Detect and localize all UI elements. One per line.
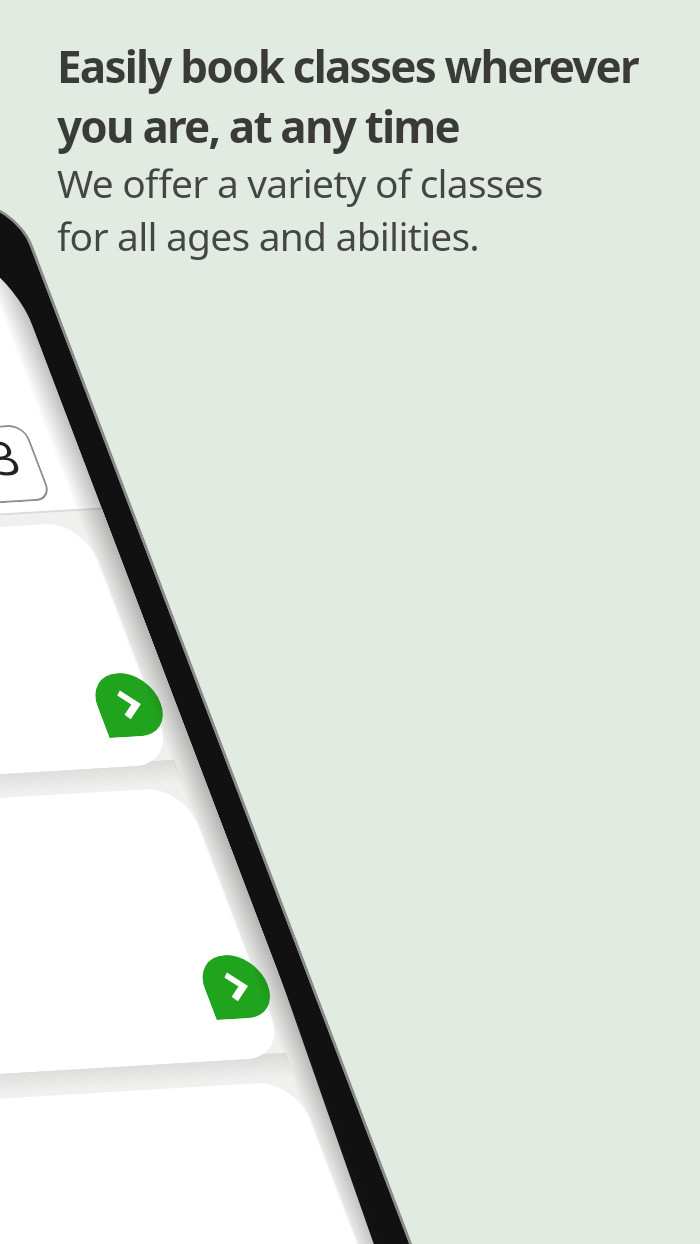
button[interactable] <box>0 533 378 1244</box>
button[interactable]: 3 <box>0 322 79 615</box>
button[interactable] <box>0 268 258 1050</box>
staticText: 3 <box>0 413 48 497</box>
staticText: for all ages and abilities. <box>57 209 479 262</box>
button[interactable] <box>64 642 194 767</box>
staticText: you are, at any time <box>57 96 459 156</box>
staticText: Easily book classes wherever <box>57 36 638 96</box>
staticText: We offer a variety of classes <box>57 156 543 209</box>
button[interactable] <box>284 1220 414 1244</box>
button[interactable] <box>0 827 490 1244</box>
button[interactable] <box>0 1121 602 1244</box>
button[interactable] <box>171 924 301 1049</box>
